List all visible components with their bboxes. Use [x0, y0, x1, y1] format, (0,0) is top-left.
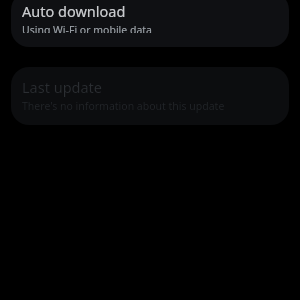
staticText: Last update [22, 77, 103, 97]
staticText: Using Wi-Fi or mobile data [22, 23, 152, 33]
button[interactable]: Auto download [11, 0, 289, 47]
staticText: There's no information about this update [22, 99, 225, 113]
button[interactable]: Last update [11, 67, 289, 125]
staticText: Auto download [22, 1, 126, 21]
